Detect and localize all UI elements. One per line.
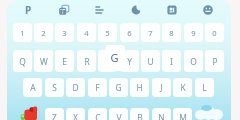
staticText: 6 (127, 28, 132, 38)
button[interactable]: I (162, 50, 181, 72)
button[interactable]: V (109, 108, 128, 120)
button[interactable]: B (130, 108, 149, 120)
button[interactable]: U (141, 50, 160, 72)
staticText: G (115, 82, 122, 93)
button[interactable]: 7 (141, 23, 160, 42)
button[interactable]: L (195, 78, 214, 97)
button[interactable]: H (130, 78, 149, 97)
staticText: W (40, 56, 48, 67)
staticText: A (30, 82, 36, 93)
staticText: K (180, 82, 186, 93)
staticText: P (25, 3, 32, 17)
staticText: M (179, 112, 187, 120)
button[interactable]: J (152, 78, 171, 97)
button[interactable]: 3 (55, 23, 74, 42)
staticText: E (62, 56, 67, 67)
staticText: 3 (62, 28, 67, 38)
staticText: I (170, 56, 173, 67)
button[interactable]: S (45, 78, 64, 97)
button[interactable]: P (205, 50, 224, 72)
button[interactable]: 6 (120, 23, 139, 42)
staticText: 2 (41, 28, 46, 38)
button[interactable]: K (173, 78, 192, 97)
button[interactable]: F (88, 78, 107, 97)
button[interactable]: O (184, 50, 203, 72)
button[interactable]: D (66, 78, 85, 97)
staticText: 4 (84, 28, 89, 38)
button[interactable]: 1 (13, 23, 32, 42)
staticText: 9 (191, 28, 196, 38)
button[interactable]: Theme (121, 0, 151, 20)
button[interactable]: C (88, 108, 107, 120)
button[interactable]: 0 (205, 23, 224, 42)
staticText: O (190, 56, 197, 67)
staticText: G (110, 50, 119, 65)
button[interactable]: Panda keyboard (13, 0, 43, 20)
staticText: Z (52, 112, 57, 120)
staticText: B (137, 112, 143, 120)
staticText: H (136, 82, 143, 93)
staticText: Y (127, 56, 132, 67)
button[interactable]: Stickers (157, 0, 187, 20)
staticText: P (212, 56, 218, 67)
button[interactable]: Q (13, 50, 32, 72)
button[interactable]: 2 (34, 23, 53, 42)
button[interactable]: N (152, 108, 171, 120)
staticText: X (73, 112, 78, 120)
staticText: N (158, 112, 165, 120)
button[interactable]: X (66, 108, 85, 120)
button[interactable]: R (77, 50, 96, 72)
staticText: U (147, 56, 154, 67)
staticText: J (160, 82, 163, 93)
button[interactable]: Emoji (193, 0, 223, 20)
staticText: F (95, 82, 100, 93)
staticText: S (52, 82, 57, 93)
staticText: V (116, 112, 122, 120)
button[interactable]: T (98, 50, 117, 72)
button[interactable]: Z (45, 108, 64, 120)
button[interactable]: 9 (184, 23, 203, 42)
button[interactable]: 5 (98, 23, 117, 42)
staticText: 8 (169, 28, 174, 38)
staticText: 7 (148, 28, 153, 38)
staticText: 1 (20, 28, 25, 38)
button[interactable]: A (23, 78, 42, 97)
button[interactable]: Y (120, 50, 139, 72)
staticText: L (202, 82, 207, 93)
button[interactable]: G (109, 78, 128, 97)
button[interactable]: E (55, 50, 74, 72)
button[interactable]: Text editing (85, 0, 115, 20)
button[interactable]: M (173, 108, 192, 120)
button[interactable]: 8 (162, 23, 181, 42)
staticText: D (72, 82, 79, 93)
staticText: 0 (212, 28, 217, 38)
staticText: 5 (105, 28, 110, 38)
staticText: R (84, 56, 90, 67)
staticText: Q (19, 56, 26, 67)
button[interactable]: W (34, 50, 53, 72)
button[interactable]: Clipboard (49, 0, 79, 20)
button[interactable]: 4 (77, 23, 96, 42)
staticText: C (95, 112, 101, 120)
